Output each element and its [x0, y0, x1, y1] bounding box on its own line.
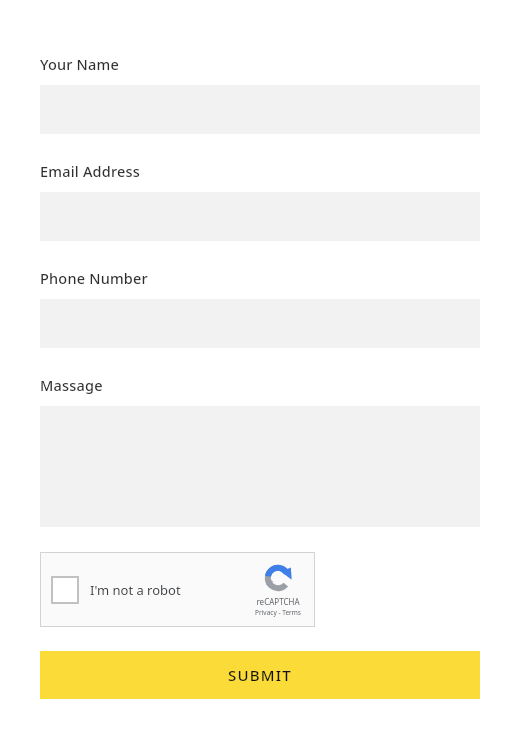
staticText: SUBMIT: [228, 665, 292, 685]
button[interactable]: SUBMIT: [40, 651, 480, 699]
staticText: Privacy - Terms: [255, 608, 301, 617]
staticText: I'm not a robot: [90, 581, 181, 599]
staticText: Massage: [40, 375, 103, 395]
staticText: Your Name: [40, 54, 119, 74]
button[interactable]: I'm not a robot checkbox: [40, 552, 315, 627]
button[interactable]: I'm not a robot checkbox: [51, 576, 79, 604]
staticText: Phone Number: [40, 268, 148, 288]
staticText: Email Address: [40, 161, 141, 181]
staticText: reCAPTCHA: [256, 596, 300, 607]
